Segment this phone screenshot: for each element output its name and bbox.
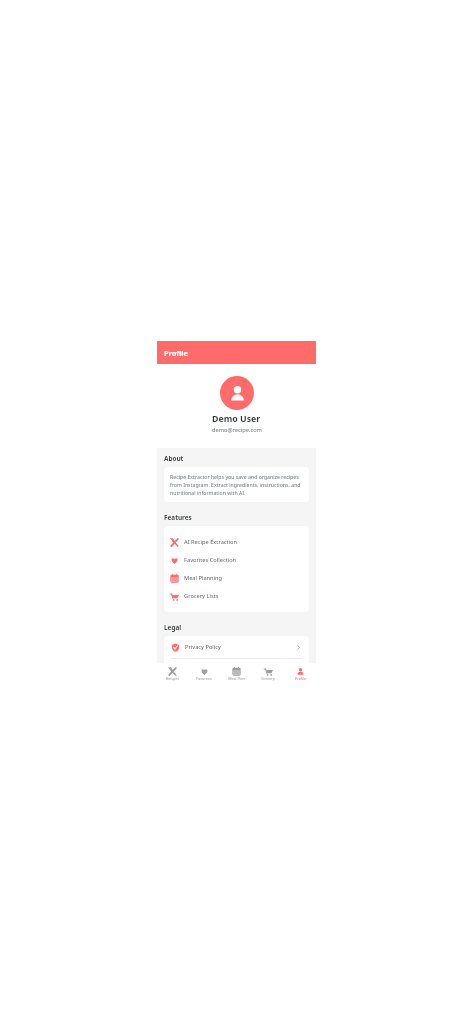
- staticText: Recipes: [166, 676, 179, 681]
- staticText: About: [164, 454, 184, 463]
- staticText: Favorites: [196, 676, 212, 681]
- button[interactable]: Favorites: [188, 663, 220, 684]
- button[interactable]: Recipes: [157, 663, 188, 684]
- button[interactable]: Grocery: [252, 663, 284, 684]
- staticText: Profile: [295, 676, 306, 681]
- button[interactable]: Favorites Collection: [164, 551, 309, 569]
- staticText: Meal Plan: [228, 676, 245, 681]
- button[interactable]: Meal Planning: [164, 569, 309, 587]
- staticText: Grocery: [261, 676, 275, 681]
- button[interactable]: Profile: [284, 663, 316, 684]
- button[interactable]: Grocery Lists: [164, 587, 309, 605]
- staticText: demo@recipe.com: [212, 426, 262, 434]
- staticText: Grocery Lists: [184, 592, 219, 600]
- staticText: AI Recipe Extraction: [184, 538, 238, 546]
- staticText: Legal: [164, 623, 182, 632]
- staticText: Meal Planning: [184, 574, 223, 582]
- button[interactable]: Privacy Policy: [164, 636, 309, 658]
- staticText: Privacy Policy: [185, 643, 221, 651]
- staticText: Recipe Extractor helps you save and orga…: [170, 473, 303, 496]
- button[interactable]: Profile: [157, 341, 316, 364]
- staticText: Favorites Collection: [184, 556, 237, 564]
- button[interactable]: Meal Plan: [220, 663, 252, 684]
- button[interactable]: AI Recipe Extraction: [164, 533, 309, 551]
- staticText: Demo User: [212, 413, 261, 425]
- staticText: Features: [164, 513, 192, 522]
- staticText: Profile: [164, 348, 188, 358]
